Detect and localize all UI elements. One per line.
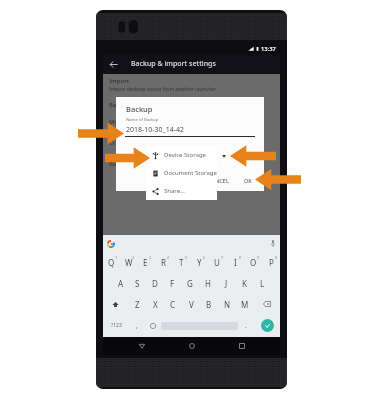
staticText: E <box>143 257 148 268</box>
staticText: U <box>214 257 220 268</box>
button[interactable]: CANCEL <box>205 175 232 186</box>
staticText: , <box>136 321 138 330</box>
staticText: ?123 <box>111 322 122 329</box>
button[interactable]: R <box>154 252 172 273</box>
button[interactable]: Z <box>128 294 146 314</box>
staticText: I <box>234 257 237 268</box>
button[interactable]: W <box>120 252 137 273</box>
staticText: V <box>189 299 194 310</box>
button[interactable]: G <box>181 273 199 294</box>
staticText: 0 <box>275 255 278 260</box>
staticText: Share... <box>164 187 185 195</box>
staticText: A <box>118 278 124 289</box>
staticText: C <box>170 299 176 310</box>
staticText: X <box>153 299 158 310</box>
button[interactable]: OK <box>241 175 255 186</box>
staticText: Name of Backup <box>126 117 159 123</box>
button[interactable]: Enter <box>254 314 280 337</box>
staticText: Manual backup <box>109 118 153 126</box>
staticText: K <box>242 278 247 289</box>
staticText: L <box>260 278 265 289</box>
staticText: 3 <box>149 255 152 260</box>
staticText: J <box>225 278 228 289</box>
staticText: CANCEL <box>208 177 229 184</box>
button[interactable]: A <box>112 273 129 294</box>
staticText: N <box>224 299 231 310</box>
button[interactable]: ?123 <box>103 314 129 337</box>
button[interactable]: Home <box>183 337 201 355</box>
button[interactable]: O <box>244 252 262 273</box>
staticText: O <box>250 257 257 268</box>
button[interactable]: Q <box>103 252 120 273</box>
staticText: 9 <box>257 255 260 260</box>
staticText: Backup <box>126 104 153 114</box>
staticText: Y <box>197 257 202 268</box>
staticText: 8 <box>239 255 242 260</box>
staticText: 4 <box>167 255 170 260</box>
staticText: Device Storage <box>164 151 206 159</box>
staticText: W <box>125 257 133 268</box>
button[interactable]: J <box>217 273 235 294</box>
button[interactable]: . <box>238 314 254 337</box>
button[interactable]: V <box>182 294 200 314</box>
staticText: Z <box>135 299 140 310</box>
button[interactable]: Document Storage <box>146 164 217 182</box>
staticText: P <box>269 257 274 268</box>
button[interactable]: E <box>137 252 154 273</box>
staticText: D <box>152 278 158 289</box>
button[interactable]: Shift <box>103 294 128 314</box>
button[interactable]: N <box>218 294 236 314</box>
button[interactable]: C <box>164 294 182 314</box>
staticText: 1 <box>115 255 118 260</box>
button[interactable]: Back <box>133 337 151 355</box>
button[interactable]: B <box>200 294 218 314</box>
button[interactable]: Device Storage <box>146 146 217 164</box>
staticText: T <box>179 257 184 268</box>
staticText: . <box>245 321 247 330</box>
staticText: Backup <box>109 101 131 109</box>
button[interactable]: I <box>226 252 244 273</box>
staticText: 5 <box>185 255 188 260</box>
staticText: M <box>241 299 249 310</box>
button[interactable]: F <box>163 273 181 294</box>
staticText: G <box>187 278 193 289</box>
staticText: Document Storage <box>164 169 217 177</box>
button[interactable]: K <box>235 273 253 294</box>
staticText: F <box>170 278 175 289</box>
button[interactable]: Backspace <box>254 294 280 314</box>
staticText: Import <box>109 77 130 85</box>
button[interactable]: Emoji <box>145 314 161 337</box>
staticText: Import desktop layout from another launc… <box>109 86 217 93</box>
staticText: R <box>161 257 166 268</box>
staticText: 7 <box>221 255 224 260</box>
staticText: Create backup <box>109 139 150 147</box>
button[interactable]: Y <box>190 252 208 273</box>
staticText: 2018-10-30_14-42 <box>126 125 184 135</box>
staticText: 13:37 <box>261 45 276 53</box>
button[interactable]: M <box>236 294 254 314</box>
staticText: Backup & import settings <box>131 59 216 69</box>
button[interactable]: Back <box>107 58 120 71</box>
button[interactable]: L <box>253 273 271 294</box>
button[interactable]: H <box>199 273 217 294</box>
staticText: H <box>205 278 211 289</box>
staticText: 2 <box>132 255 135 260</box>
button[interactable]: D <box>146 273 163 294</box>
staticText: OK <box>244 177 252 184</box>
staticText: 6 <box>203 255 206 260</box>
button[interactable]: T <box>172 252 190 273</box>
button[interactable]: Share... <box>146 182 217 200</box>
staticText: B <box>206 299 212 310</box>
staticText: Restore or manage backups <box>109 160 188 168</box>
button[interactable]: Back <box>103 54 280 74</box>
button[interactable]: X <box>146 294 164 314</box>
button[interactable]: P <box>262 252 280 273</box>
staticText: S <box>135 278 140 289</box>
button[interactable]: S <box>129 273 146 294</box>
button[interactable]: U <box>208 252 226 273</box>
staticText: Q <box>108 257 115 268</box>
button[interactable]: Recents <box>233 337 251 355</box>
button[interactable]: , <box>129 314 145 337</box>
